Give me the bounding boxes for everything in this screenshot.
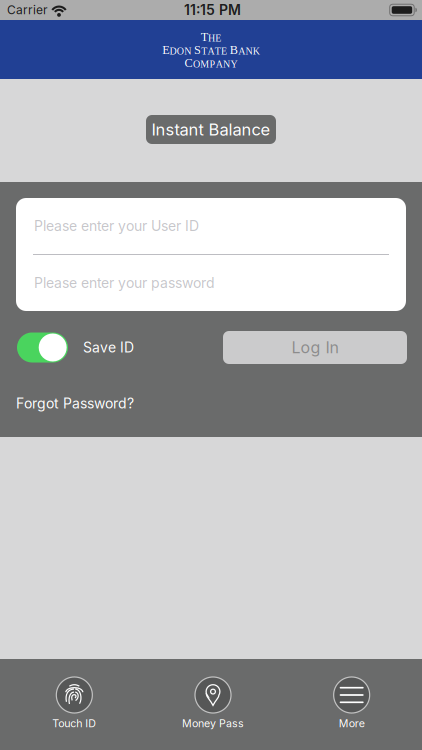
button[interactable] (17, 332, 68, 362)
staticText: Instant Balance (151, 119, 270, 139)
staticText: A (238, 46, 245, 57)
staticText: A (207, 46, 214, 57)
staticText: Save ID (83, 339, 134, 356)
staticText: K (253, 46, 260, 57)
staticText: N (245, 46, 252, 57)
staticText: H (208, 32, 215, 44)
button[interactable]: More (282, 677, 421, 730)
staticText: P (209, 59, 215, 70)
button[interactable]: Log In (223, 331, 407, 364)
staticText: Please enter your password (34, 274, 215, 291)
button[interactable]: Forgot Password? (0, 395, 422, 412)
staticText: Money Pass (182, 717, 244, 730)
staticText: M (200, 59, 209, 70)
staticText: 11:15 PM (184, 1, 241, 18)
staticText: Forgot Password? (16, 395, 134, 412)
staticText: E (162, 43, 169, 57)
staticText: N (223, 59, 230, 70)
staticText: T (201, 30, 208, 44)
staticText: E (215, 32, 221, 44)
button[interactable]: Touch ID (5, 677, 144, 730)
staticText: T (201, 46, 207, 57)
staticText: N (184, 46, 191, 57)
staticText: O (193, 59, 200, 70)
staticText: A (216, 59, 223, 70)
staticText: T (215, 46, 221, 57)
staticText: D (169, 46, 176, 57)
staticText: S (194, 43, 201, 57)
staticText: O (177, 46, 184, 57)
staticText: Touch ID (52, 717, 96, 730)
staticText: Log In (291, 338, 338, 357)
button[interactable]: Money Pass (144, 677, 282, 730)
staticText: Please enter your User ID (34, 217, 199, 234)
staticText: Y (230, 59, 237, 70)
button[interactable]: Instant Balance (146, 115, 276, 144)
staticText: B (230, 43, 238, 57)
staticText: More (339, 717, 365, 730)
staticText: C (185, 56, 193, 70)
staticText: E (221, 46, 227, 57)
staticText: Carrier (7, 3, 48, 17)
